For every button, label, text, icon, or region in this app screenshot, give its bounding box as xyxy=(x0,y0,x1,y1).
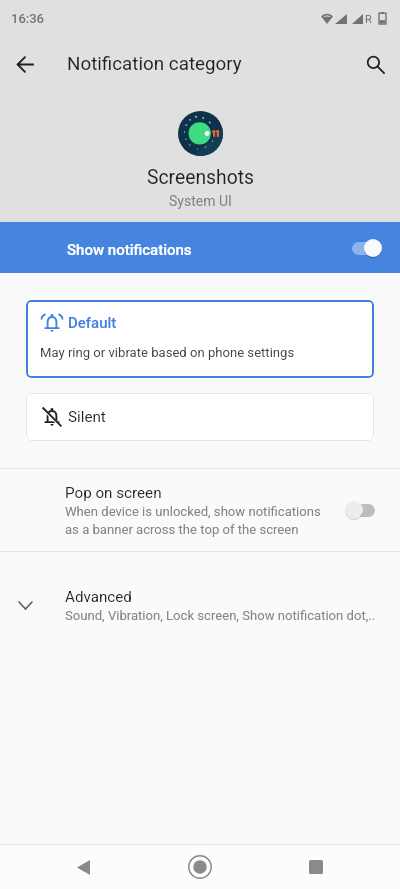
staticText: Show notifications xyxy=(67,241,192,259)
staticText: Advanced xyxy=(65,588,132,606)
button[interactable]: Search xyxy=(355,44,395,84)
button[interactable]: Show notifications xyxy=(0,222,400,273)
button[interactable]: Home xyxy=(178,845,222,889)
staticText: Sound, Vibration, Lock screen, Show noti… xyxy=(65,608,376,623)
button[interactable]: Advanced xyxy=(0,552,400,658)
button[interactable]: Recent apps xyxy=(294,845,338,889)
staticText: Screenshots xyxy=(147,166,254,189)
button[interactable]: Pop on screen xyxy=(0,469,400,551)
staticText: When device is unlocked, show notificati… xyxy=(65,504,321,537)
button[interactable]: Silent xyxy=(26,393,374,441)
button[interactable]: Default xyxy=(26,300,374,378)
staticText: Silent xyxy=(68,408,106,426)
staticText: 16:36 xyxy=(11,11,44,26)
staticText: May ring or vibrate based on phone setti… xyxy=(40,345,295,360)
staticText: Default xyxy=(68,314,117,332)
staticText: Pop on screen xyxy=(65,484,162,502)
button[interactable]: Back xyxy=(5,44,45,84)
staticText: R xyxy=(365,13,372,26)
staticText: Notification category xyxy=(67,53,242,75)
button[interactable]: Back xyxy=(61,845,105,889)
staticText: System UI xyxy=(169,193,232,209)
